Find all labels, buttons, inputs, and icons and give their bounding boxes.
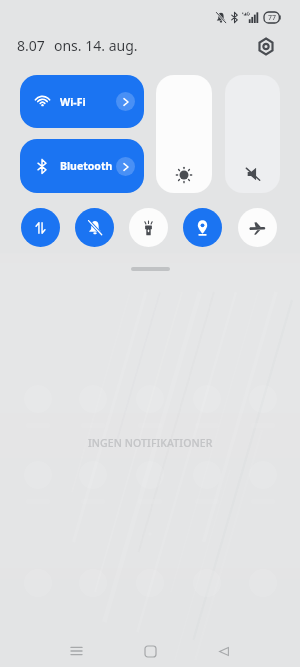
staticText: Bluetooth bbox=[60, 159, 113, 173]
staticText: 77 bbox=[268, 13, 277, 23]
button[interactable]: Home bbox=[132, 633, 168, 667]
button[interactable]: Location bbox=[183, 208, 222, 247]
button[interactable]: Airplane mode bbox=[238, 208, 277, 247]
staticText: ons. 14. aug. bbox=[54, 36, 138, 55]
staticText: INGEN NOTIFIKATIONER bbox=[88, 436, 213, 450]
button[interactable]: Silent mode bbox=[75, 208, 114, 247]
button[interactable]: Flashlight bbox=[129, 208, 168, 247]
button[interactable]: Volume bbox=[225, 75, 280, 193]
button[interactable]: Wi-Fi bbox=[20, 75, 144, 128]
button[interactable]: Settings bbox=[251, 32, 280, 61]
button[interactable]: Mobile data bbox=[21, 208, 60, 247]
button[interactable]: Brightness bbox=[156, 75, 212, 193]
staticText: 8.07 bbox=[17, 36, 45, 55]
button[interactable]: Recent apps bbox=[58, 633, 94, 667]
staticText: Wi-Fi bbox=[60, 95, 86, 109]
button[interactable]: Back bbox=[206, 633, 242, 667]
button[interactable]: Bluetooth bbox=[20, 139, 144, 193]
